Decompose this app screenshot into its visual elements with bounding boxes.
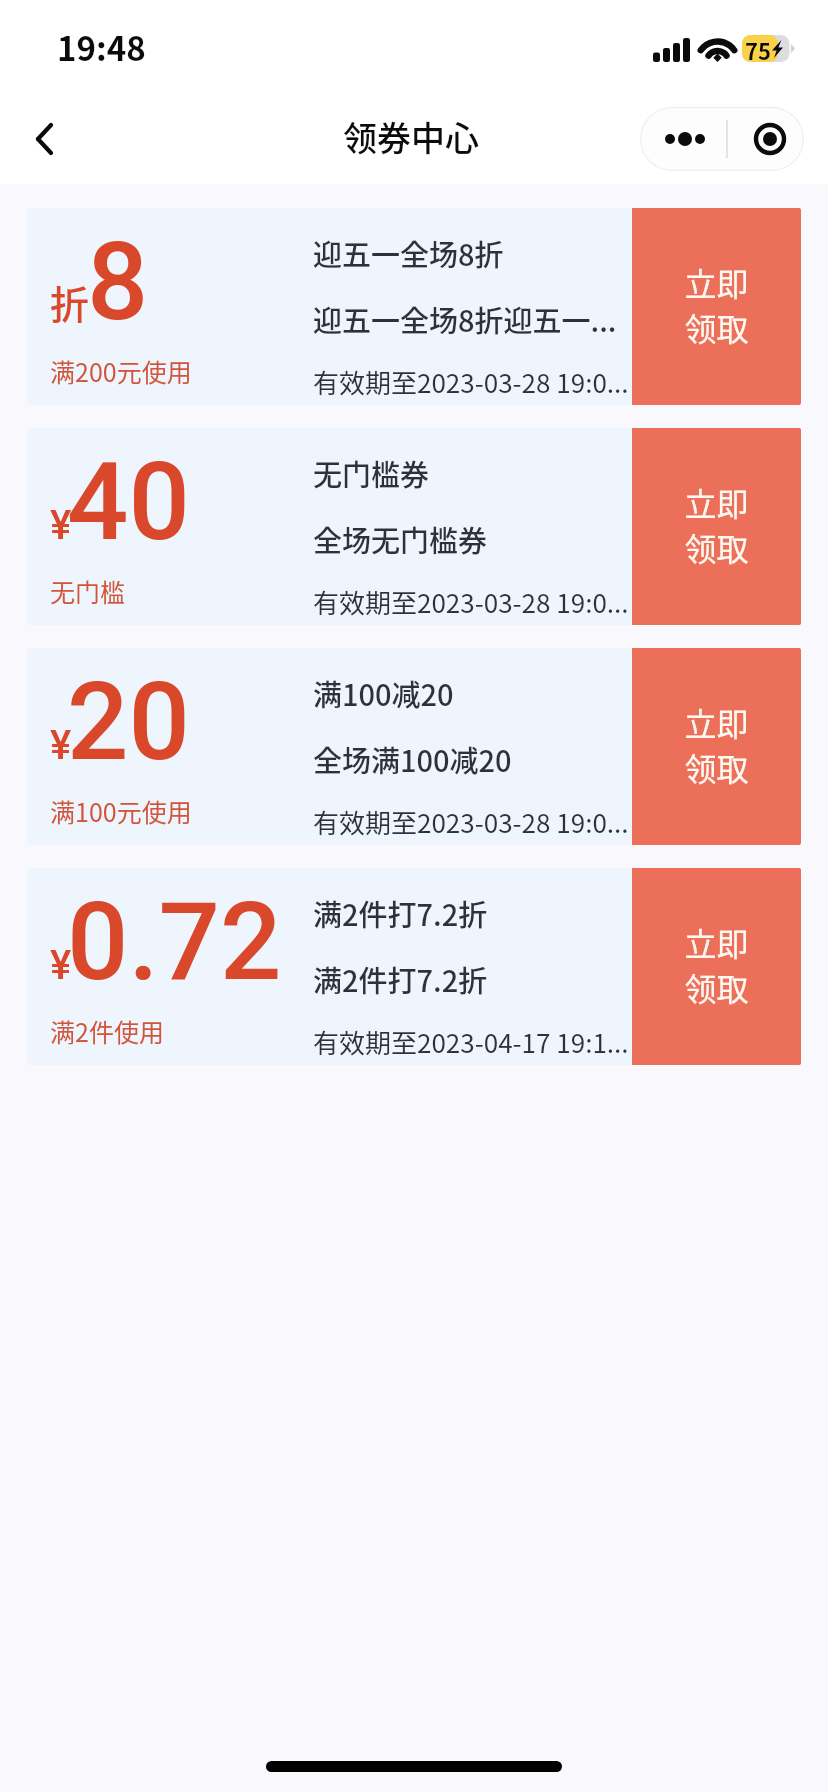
- staticText: 满2件使用: [50, 1013, 164, 1049]
- button[interactable]: 折: [27, 208, 801, 405]
- staticText: ¥: [50, 942, 72, 989]
- staticText: 满100减20: [313, 672, 454, 714]
- staticText: 有效期至2023-04-17 19:1...: [313, 1023, 629, 1061]
- staticText: 8: [87, 219, 149, 346]
- staticText: 无门槛券: [313, 452, 430, 494]
- staticText: 全场无门槛券: [313, 518, 488, 560]
- staticText: 满2件打7.2折: [313, 892, 488, 934]
- staticText: 折: [50, 274, 90, 330]
- staticText: 满100元使用: [50, 793, 192, 829]
- staticText: 19:48: [57, 23, 146, 71]
- staticText: 全场满100减20: [313, 738, 512, 780]
- button[interactable]: ¥: [27, 648, 801, 845]
- button[interactable]: More options: [640, 107, 804, 171]
- button[interactable]: ¥: [27, 428, 801, 625]
- staticText: 满200元使用: [50, 353, 192, 389]
- staticText: ¥: [50, 502, 72, 549]
- staticText: ¥: [50, 722, 72, 769]
- staticText: 立即 领取: [684, 919, 749, 1010]
- staticText: 迎五一全场8折迎五一...: [313, 298, 617, 340]
- staticText: 满2件打7.2折: [313, 958, 488, 1000]
- staticText: 40: [67, 439, 190, 566]
- staticText: 有效期至2023-03-28 19:0...: [313, 363, 629, 401]
- staticText: 立即 领取: [684, 699, 749, 790]
- button[interactable]: 立即 领取: [632, 648, 801, 845]
- button[interactable]: 立即 领取: [632, 428, 801, 625]
- staticText: 无门槛: [50, 573, 126, 609]
- staticText: 有效期至2023-03-28 19:0...: [313, 583, 629, 621]
- staticText: 立即 领取: [684, 259, 749, 350]
- staticText: 75: [745, 34, 771, 61]
- staticText: 领券中心: [343, 112, 479, 161]
- button[interactable]: Back: [0, 99, 76, 179]
- button[interactable]: 立即 领取: [632, 208, 801, 405]
- staticText: 20: [67, 659, 190, 786]
- staticText: 0.72: [67, 879, 282, 1006]
- staticText: 有效期至2023-03-28 19:0...: [313, 803, 629, 841]
- staticText: 立即 领取: [684, 479, 749, 570]
- button[interactable]: 立即 领取: [632, 868, 801, 1065]
- staticText: 迎五一全场8折: [313, 232, 504, 274]
- button[interactable]: ¥: [27, 868, 801, 1065]
